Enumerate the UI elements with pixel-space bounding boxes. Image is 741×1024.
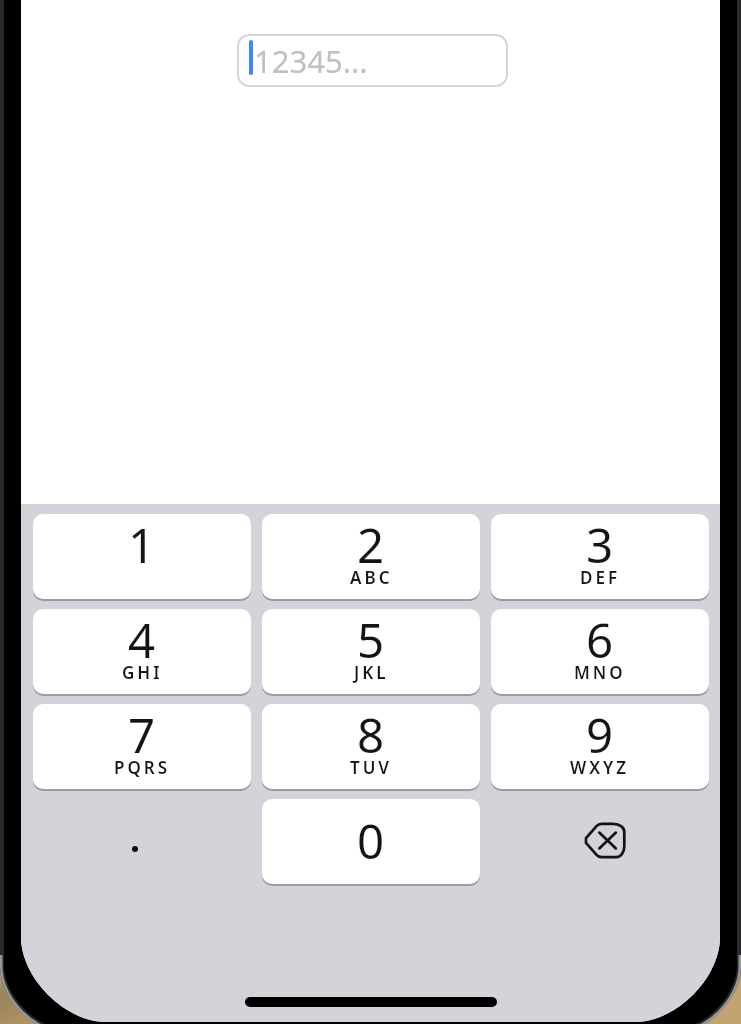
button[interactable]: 1 <box>33 514 251 599</box>
button[interactable]: 3 <box>491 514 709 599</box>
staticText: 2 <box>357 514 385 577</box>
staticText: 0 <box>357 808 385 873</box>
staticText: 1 <box>128 514 156 577</box>
staticText: 5 <box>357 609 385 672</box>
staticText: 12345... <box>254 40 368 82</box>
button[interactable]: 2 <box>262 514 480 599</box>
staticText: 7 <box>128 704 156 767</box>
button[interactable]: 8 <box>262 704 480 789</box>
button[interactable]: 6 <box>491 609 709 694</box>
button[interactable]: 5 <box>262 609 480 694</box>
button[interactable]: 7 <box>33 704 251 789</box>
staticText: 9 <box>586 704 614 767</box>
staticText: JKL <box>354 661 389 684</box>
staticText: 3 <box>586 514 614 577</box>
button[interactable]: 9 <box>491 704 709 789</box>
staticText: MNO <box>574 661 626 684</box>
button[interactable]: 0 <box>262 799 480 884</box>
staticText: PQRS <box>114 756 171 779</box>
staticText: DEF <box>580 566 621 589</box>
button[interactable] <box>89 813 181 885</box>
staticText: GHI <box>122 661 163 684</box>
button[interactable]: 12345... <box>237 34 508 87</box>
button[interactable] <box>570 810 638 872</box>
staticText: 8 <box>357 704 385 767</box>
staticText: 6 <box>586 609 614 672</box>
staticText: TUV <box>350 756 393 779</box>
button[interactable]: 4 <box>33 609 251 694</box>
staticText: 4 <box>128 609 156 672</box>
staticText: WXYZ <box>570 756 630 779</box>
staticText: ABC <box>350 566 393 589</box>
